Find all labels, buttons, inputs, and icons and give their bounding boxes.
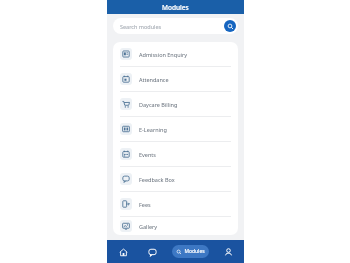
button[interactable]: Fees <box>113 192 238 216</box>
staticText: Events <box>139 151 156 158</box>
button[interactable]: Profile <box>218 242 238 262</box>
staticText: Gallery <box>139 223 158 230</box>
staticText: Modules <box>162 3 189 12</box>
button[interactable]: Home <box>113 242 133 262</box>
button[interactable]: Attendance <box>113 67 238 91</box>
staticText: Feedback Box <box>139 176 175 183</box>
staticText: E-Learning <box>139 126 167 133</box>
button[interactable]: Modules <box>172 245 209 258</box>
staticText: Search modules <box>120 23 224 30</box>
button[interactable]: Messages <box>142 242 162 262</box>
button[interactable]: Daycare Billing <box>113 92 238 116</box>
button[interactable]: Search <box>224 20 236 32</box>
button[interactable]: Gallery <box>113 217 238 235</box>
staticText: Daycare Billing <box>139 101 178 108</box>
staticText: Attendance <box>139 76 169 83</box>
button[interactable]: Feedback Box <box>113 167 238 191</box>
button[interactable]: Search modules <box>113 18 238 34</box>
staticText: Fees <box>139 201 151 208</box>
staticText: Admission Enquiry <box>139 51 188 58</box>
staticText: Modules <box>184 248 205 255</box>
button[interactable]: E-Learning <box>113 117 238 141</box>
button[interactable]: Admission Enquiry <box>113 42 238 66</box>
button[interactable]: Events <box>113 142 238 166</box>
